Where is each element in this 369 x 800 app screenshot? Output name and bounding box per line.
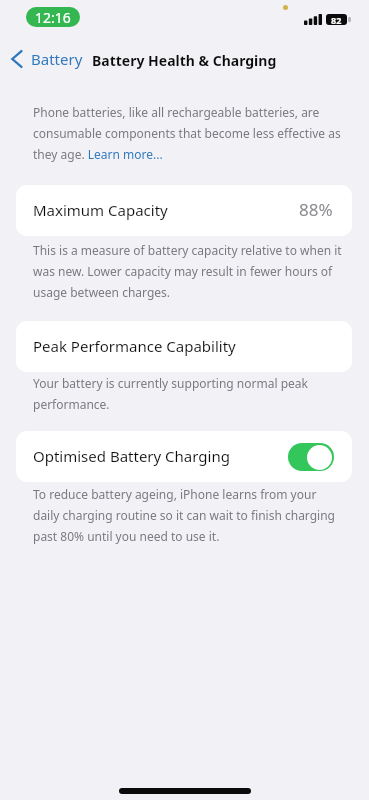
staticText: Maximum Capacity bbox=[33, 200, 168, 220]
staticText: Peak Performance Capability bbox=[33, 336, 236, 356]
staticText: Battery Health & Charging bbox=[92, 51, 277, 70]
staticText: This is a measure of battery capacity re… bbox=[33, 242, 345, 300]
staticText: 12:16 bbox=[35, 8, 71, 27]
button[interactable]: Phone batteries, like all rechargeable b… bbox=[33, 104, 345, 162]
button[interactable]: Optimised Battery Charging toggle bbox=[288, 443, 334, 471]
button[interactable]: Back to Battery bbox=[6, 48, 88, 70]
staticText: Your battery is currently supporting nor… bbox=[33, 375, 345, 412]
staticText: 82 bbox=[331, 14, 342, 25]
staticText: 88% bbox=[299, 198, 333, 221]
staticText: Optimised Battery Charging bbox=[33, 446, 230, 466]
staticText: To reduce battery ageing, iPhone learns … bbox=[33, 486, 345, 544]
staticText: Phone batteries, like all rechargeable b… bbox=[33, 104, 345, 162]
button[interactable]: Maximum Capacity bbox=[16, 185, 352, 236]
button[interactable]: Peak Performance Capability bbox=[16, 321, 352, 372]
staticText: Battery bbox=[31, 49, 83, 69]
button[interactable]: Optimised Battery Charging bbox=[16, 431, 352, 482]
